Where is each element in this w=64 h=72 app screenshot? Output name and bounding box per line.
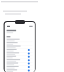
button[interactable]: Status [28, 48, 30, 50]
button[interactable]: Phone preview [4, 21, 36, 72]
